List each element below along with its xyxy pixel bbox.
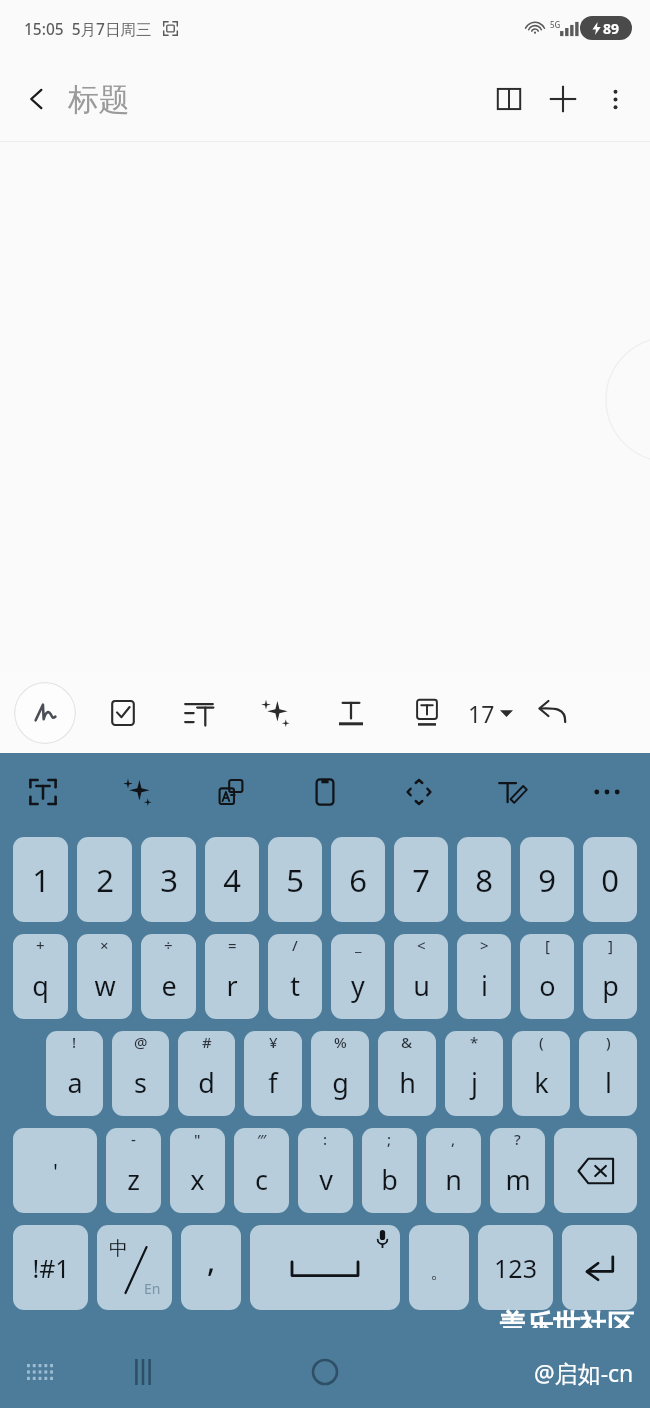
staticText: #: [202, 1032, 212, 1052]
staticText: ÷: [164, 935, 173, 955]
button[interactable]: h: [378, 1031, 436, 1116]
staticText: !#1: [32, 1251, 70, 1285]
button[interactable]: Checklist: [98, 688, 148, 738]
staticText: ×: [100, 935, 109, 955]
button[interactable]: Comma: [181, 1225, 241, 1310]
button[interactable]: b: [362, 1128, 417, 1213]
button[interactable]: 9: [520, 837, 574, 922]
button[interactable]: 3: [141, 837, 196, 922]
button[interactable]: o: [520, 934, 574, 1019]
button[interactable]: l: [579, 1031, 637, 1116]
button[interactable]: 4: [205, 837, 259, 922]
staticText: j: [471, 1064, 478, 1101]
button[interactable]: w: [77, 934, 132, 1019]
button[interactable]: Paragraph: [174, 688, 224, 738]
button[interactable]: Switch language: [97, 1225, 172, 1310]
button[interactable]: e: [141, 934, 196, 1019]
button[interactable]: Period: [409, 1225, 469, 1310]
staticText: h: [399, 1064, 416, 1101]
button[interactable]: 5: [268, 837, 322, 922]
staticText: %: [334, 1032, 347, 1052]
button[interactable]: i: [457, 934, 511, 1019]
staticText: 7: [412, 859, 430, 901]
staticText: 中: [109, 1237, 128, 1261]
staticText: -: [131, 1129, 136, 1149]
button[interactable]: r: [205, 934, 259, 1019]
button[interactable]: Add: [536, 72, 590, 126]
button[interactable]: x: [170, 1128, 225, 1213]
button[interactable]: 1: [13, 837, 68, 922]
button[interactable]: 8: [457, 837, 511, 922]
button[interactable]: Text box: [402, 688, 452, 738]
button[interactable]: Enter: [562, 1225, 637, 1310]
button[interactable]: Text recognition: [20, 769, 66, 815]
button[interactable]: m: [490, 1128, 545, 1213]
button[interactable]: t: [268, 934, 322, 1019]
button[interactable]: Backspace: [554, 1128, 637, 1213]
button[interactable]: Handwriting input: [490, 769, 536, 815]
staticText: ?: [514, 1129, 521, 1149]
staticText: >: [480, 935, 489, 955]
button[interactable]: Handwriting: [14, 682, 76, 744]
staticText: ‴: [257, 1129, 267, 1149]
staticText: o: [539, 967, 556, 1004]
button[interactable]: More: [584, 769, 630, 815]
staticText: ,: [451, 1129, 456, 1149]
staticText: v: [319, 1161, 333, 1198]
button[interactable]: !#1: [13, 1225, 88, 1310]
staticText: d: [198, 1064, 215, 1101]
button[interactable]: Space: [250, 1225, 400, 1310]
button[interactable]: 0: [583, 837, 637, 922]
button[interactable]: p: [583, 934, 637, 1019]
button[interactable]: Hide keyboard: [18, 1350, 62, 1394]
staticText: 17: [468, 698, 495, 729]
staticText: e: [161, 967, 177, 1004]
button[interactable]: c: [234, 1128, 289, 1213]
button[interactable]: s: [112, 1031, 169, 1116]
staticText: :: [323, 1129, 328, 1149]
button[interactable]: 123: [478, 1225, 553, 1310]
staticText: z: [127, 1161, 140, 1198]
staticText: 标题: [68, 80, 130, 119]
button[interactable]: Text style: [326, 688, 376, 738]
staticText: m: [505, 1161, 531, 1198]
button[interactable]: k: [512, 1031, 570, 1116]
button[interactable]: j: [445, 1031, 503, 1116]
button[interactable]: Reading view: [482, 72, 536, 126]
button[interactable]: Undo: [527, 688, 577, 738]
button[interactable]: Translate: [208, 769, 254, 815]
button[interactable]: 6: [331, 837, 385, 922]
button[interactable]: y: [331, 934, 385, 1019]
staticText: [: [545, 935, 550, 955]
staticText: y: [351, 967, 365, 1004]
button[interactable]: AI assist: [250, 688, 300, 738]
button[interactable]: g: [311, 1031, 369, 1116]
button[interactable]: v: [298, 1128, 353, 1213]
button[interactable]: n: [426, 1128, 481, 1213]
button[interactable]: Clipboard: [302, 769, 348, 815]
staticText: f: [268, 1064, 278, 1101]
button[interactable]: More options: [590, 74, 640, 124]
button[interactable]: a: [46, 1031, 103, 1116]
button[interactable]: Move cursor: [396, 769, 442, 815]
button[interactable]: Home: [298, 1345, 352, 1399]
staticText: En: [144, 1279, 161, 1298]
button[interactable]: Recents: [118, 1347, 168, 1397]
staticText: b: [381, 1161, 398, 1198]
button[interactable]: u: [394, 934, 448, 1019]
staticText: =: [228, 935, 237, 955]
staticText: 8: [475, 859, 493, 901]
button[interactable]: Back: [12, 74, 62, 124]
button[interactable]: 7: [394, 837, 448, 922]
staticText: (: [539, 1032, 544, 1052]
button[interactable]: z: [106, 1128, 161, 1213]
staticText: t: [290, 967, 300, 1004]
button[interactable]: ': [13, 1128, 97, 1213]
staticText: n: [445, 1161, 462, 1198]
button[interactable]: AI: [114, 769, 160, 815]
button[interactable]: d: [178, 1031, 235, 1116]
button[interactable]: q: [13, 934, 68, 1019]
button[interactable]: Font size 17: [468, 687, 513, 739]
button[interactable]: f: [244, 1031, 302, 1116]
button[interactable]: 2: [77, 837, 132, 922]
